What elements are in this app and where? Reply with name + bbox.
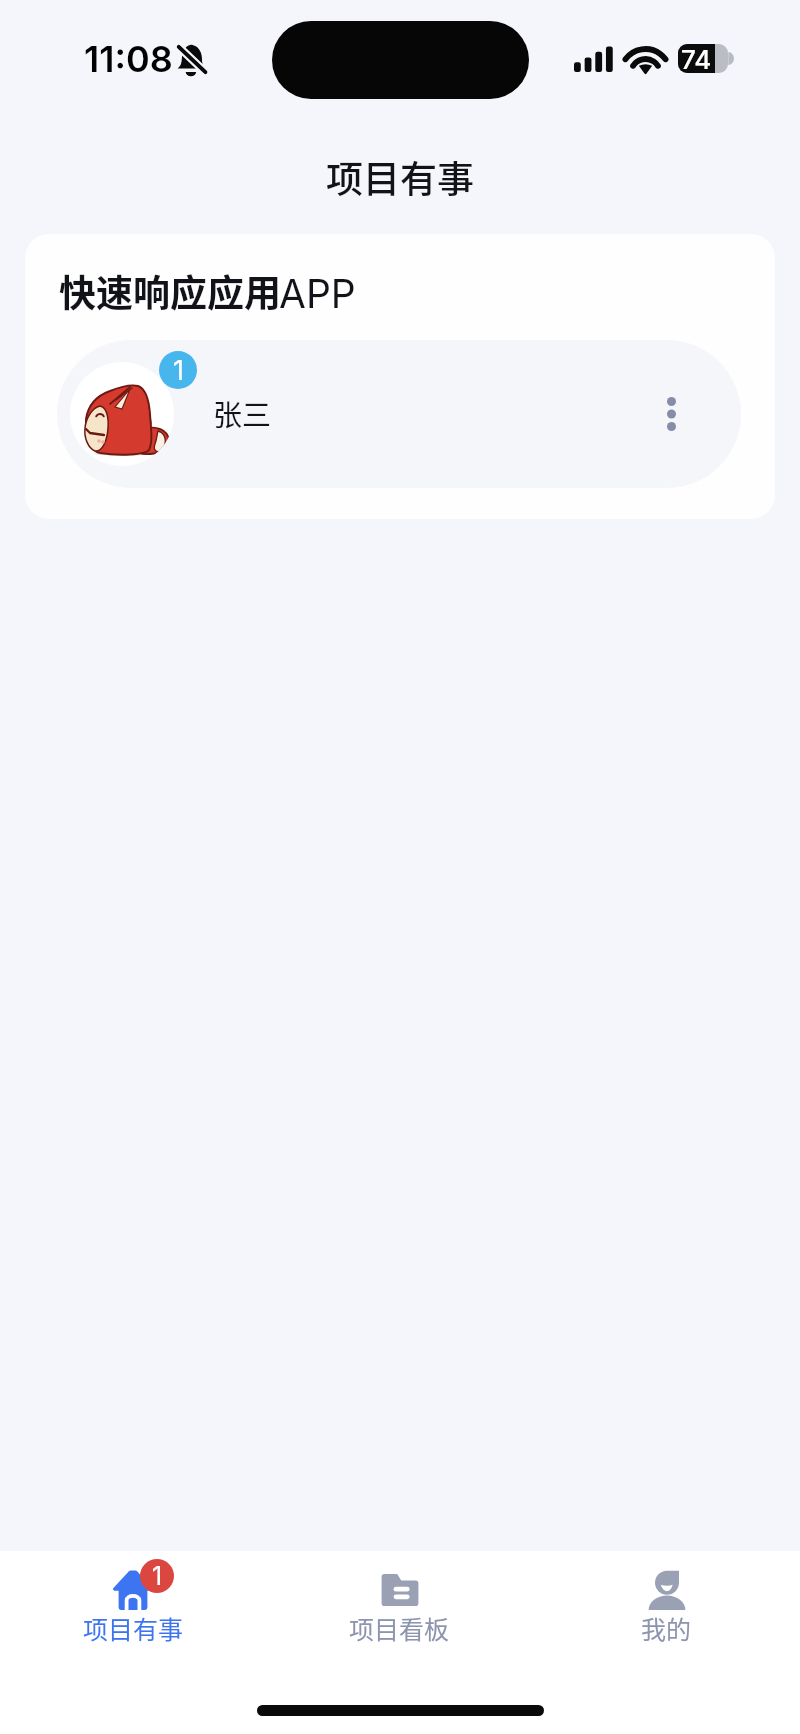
staticText: 1 [173, 354, 184, 387]
staticText: 74 [681, 44, 712, 73]
button[interactable]: 项目看板 [266, 1551, 533, 1651]
button[interactable]: More options [641, 384, 701, 444]
staticText: 1 [152, 1561, 163, 1591]
button[interactable]: 张三 [57, 340, 741, 488]
staticText: 项目有事 [83, 1610, 184, 1646]
staticText: 张三 [213, 392, 272, 434]
button[interactable]: 1 [0, 1551, 266, 1651]
staticText: 项目有事 [326, 150, 474, 204]
staticText: 快速响应应用 [59, 264, 281, 318]
staticText: APP [279, 270, 356, 317]
staticText: 11:08 [84, 37, 173, 81]
staticText: 项目看板 [349, 1610, 450, 1646]
button[interactable]: 我的 [533, 1551, 800, 1651]
staticText: 我的 [641, 1610, 692, 1646]
